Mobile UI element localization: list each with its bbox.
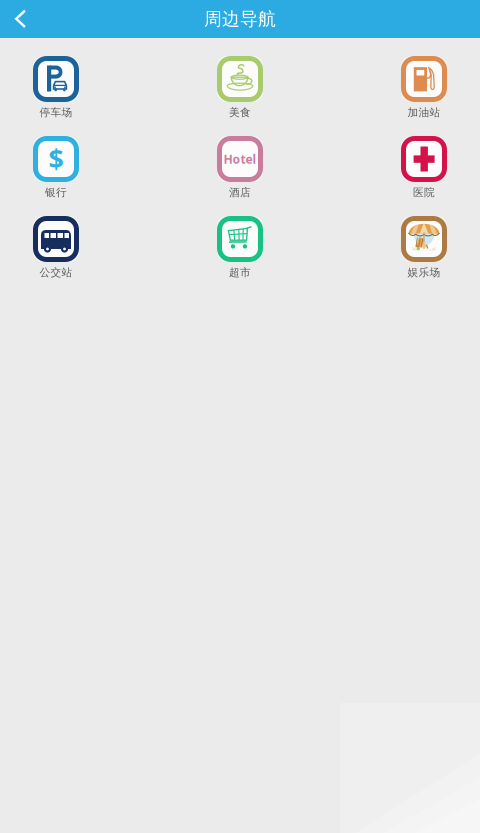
- button[interactable]: 美食: [190, 56, 290, 136]
- staticText: 医院: [413, 186, 435, 199]
- staticText: 加油站: [407, 106, 440, 119]
- button[interactable]: 返回: [0, 0, 39, 38]
- button[interactable]: Hotel: [190, 136, 290, 216]
- button[interactable]: 公交站: [6, 216, 106, 296]
- button[interactable]: 医院: [374, 136, 474, 216]
- staticText: 周边导航: [204, 8, 276, 30]
- button[interactable]: 超市: [190, 216, 290, 296]
- staticText: 娱乐场: [407, 266, 440, 279]
- staticText: 公交站: [39, 266, 72, 279]
- staticText: $: [48, 141, 63, 177]
- button[interactable]: $: [6, 136, 106, 216]
- staticText: 停车场: [39, 106, 72, 119]
- staticText: 酒店: [229, 186, 251, 199]
- button[interactable]: 娱乐场: [374, 216, 474, 296]
- button[interactable]: 停车场: [6, 56, 106, 136]
- staticText: 美食: [229, 106, 251, 119]
- staticText: 银行: [45, 186, 67, 199]
- staticText: Hotel: [223, 151, 256, 167]
- staticText: 超市: [229, 266, 251, 279]
- button[interactable]: 加油站: [374, 56, 474, 136]
